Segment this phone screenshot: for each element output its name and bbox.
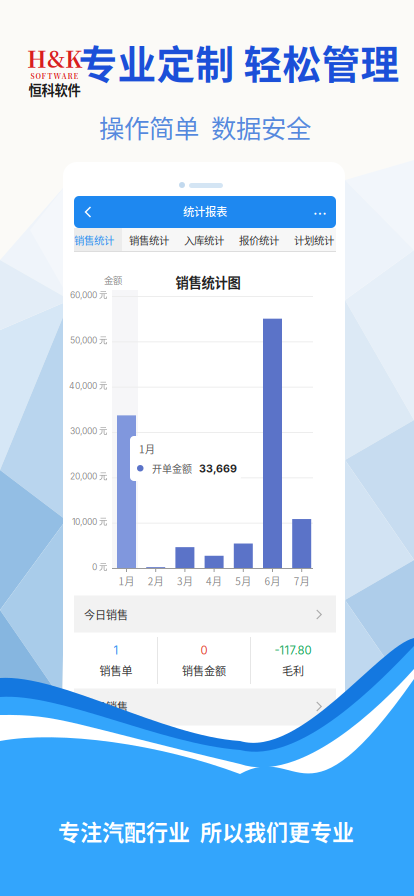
button[interactable]: 本月销售 xyxy=(74,688,336,725)
staticText: 1月 xyxy=(139,442,155,456)
button[interactable]: 报价统计 xyxy=(233,228,285,252)
staticText: H&K xyxy=(27,42,82,74)
button[interactable]: More xyxy=(307,195,333,223)
staticText: 6月 xyxy=(264,574,280,588)
staticText: 1月 xyxy=(118,574,134,588)
staticText: 恒科软件 xyxy=(28,80,80,99)
button[interactable]: 销售统计 xyxy=(123,228,175,252)
staticText: 今日销售 xyxy=(84,606,128,622)
staticText: 专注汽配行业 所以我们更专业 xyxy=(58,815,354,847)
staticText: 0 元 xyxy=(92,562,108,572)
button[interactable]: Back xyxy=(75,198,101,226)
staticText: … xyxy=(313,199,327,219)
staticText: 金额 xyxy=(104,273,122,287)
staticText: 销售统计 xyxy=(74,232,114,248)
staticText: 本月销售 xyxy=(84,698,128,714)
staticText: 5月 xyxy=(235,574,251,588)
staticText: 专业定制 轻松管理 xyxy=(78,34,399,90)
staticText: SOFTWARE xyxy=(30,71,78,81)
staticText: 10,000 元 xyxy=(72,516,108,527)
staticText: 销售统计图 xyxy=(175,272,240,292)
staticText: 入库统计 xyxy=(184,232,224,248)
staticText: 销售单 xyxy=(99,662,132,678)
button[interactable]: 计划统计 xyxy=(288,228,340,252)
staticText: 计划统计 xyxy=(294,232,334,248)
staticText: 60,000 元 xyxy=(70,290,108,300)
staticText: 0 xyxy=(200,644,207,657)
button[interactable]: 销售统计 xyxy=(68,228,120,252)
staticText: 1 xyxy=(113,644,118,657)
staticText: 报价统计 xyxy=(239,232,279,248)
staticText: 销售统计 xyxy=(129,232,169,248)
staticText: 操作简单 数据安全 xyxy=(99,109,311,145)
staticText: 33,669 xyxy=(199,462,237,475)
staticText: 7月 xyxy=(294,574,310,588)
staticText: 40,000 元 xyxy=(69,380,108,391)
staticText: 50,000 元 xyxy=(70,335,108,346)
button[interactable]: 入库统计 xyxy=(178,228,230,252)
staticText: 3月 xyxy=(177,574,193,588)
staticText: 4月 xyxy=(206,574,222,588)
staticText: 毛利 xyxy=(282,662,304,678)
staticText: 开单金额 xyxy=(152,461,192,476)
staticText: 2月 xyxy=(148,574,164,588)
button[interactable]: 今日销售 xyxy=(74,595,336,632)
staticText: 销售金额 xyxy=(182,662,226,678)
staticText: 统计报表 xyxy=(183,203,227,219)
staticText: 20,000 元 xyxy=(70,471,108,482)
staticText: -117.80 xyxy=(274,644,311,657)
staticText: 30,000 元 xyxy=(70,426,108,436)
